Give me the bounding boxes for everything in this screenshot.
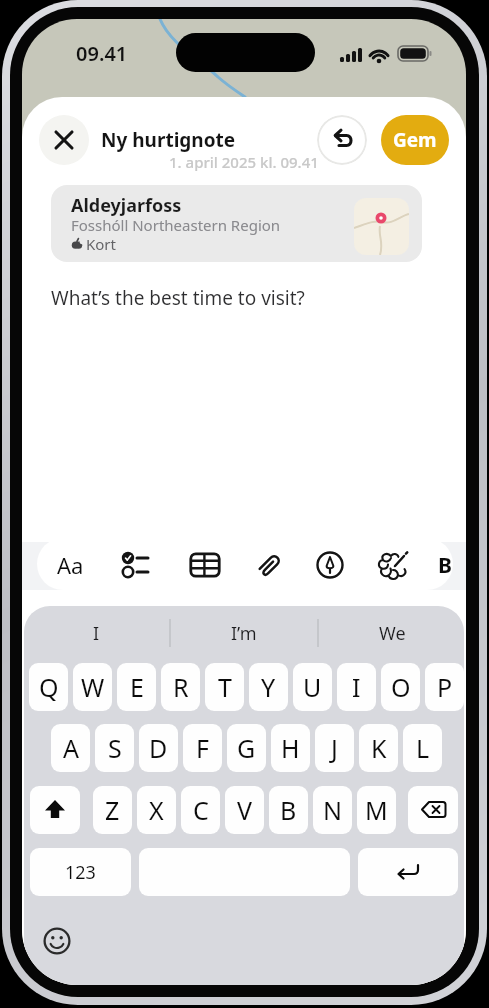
button[interactable]: We <box>320 619 464 647</box>
staticText: A <box>63 731 79 765</box>
button[interactable]: I’m <box>172 619 316 647</box>
button[interactable]: L <box>403 724 442 772</box>
button[interactable] <box>358 848 458 896</box>
button[interactable]: I <box>337 663 376 711</box>
button[interactable]: J <box>315 724 354 772</box>
button[interactable]: H <box>271 724 310 772</box>
button[interactable]: Aa <box>48 549 92 581</box>
staticText: G <box>237 731 256 765</box>
staticText: Y <box>261 670 276 704</box>
staticText: Ny hurtignote <box>101 127 236 153</box>
button[interactable] <box>51 185 422 262</box>
staticText: T <box>218 670 232 704</box>
button[interactable] <box>408 786 458 834</box>
staticText: W <box>81 670 105 704</box>
button[interactable]: A <box>51 724 90 772</box>
button[interactable] <box>252 549 288 581</box>
button[interactable]: T <box>205 663 244 711</box>
staticText: C <box>193 793 209 827</box>
button[interactable] <box>39 115 89 165</box>
staticText: L <box>416 731 430 765</box>
button[interactable] <box>317 115 367 165</box>
button[interactable]: W <box>73 663 112 711</box>
staticText: K <box>371 731 387 765</box>
button[interactable] <box>118 549 154 581</box>
staticText: I’m <box>231 621 257 646</box>
button[interactable]: U <box>293 663 332 711</box>
button[interactable]: O <box>381 663 420 711</box>
button[interactable]: R <box>161 663 200 711</box>
staticText: Aa <box>57 550 84 580</box>
staticText: U <box>303 670 322 704</box>
staticText: Fosshóll Northeastern Region <box>71 215 281 235</box>
button[interactable]: X <box>137 786 176 834</box>
staticText: N <box>323 793 343 827</box>
staticText: F <box>196 731 209 765</box>
button[interactable]: Y <box>249 663 288 711</box>
button[interactable]: F <box>183 724 222 772</box>
staticText: Q <box>39 670 59 704</box>
button[interactable]: I <box>24 619 168 647</box>
button[interactable]: K <box>359 724 398 772</box>
button[interactable]: N <box>313 786 352 834</box>
staticText: J <box>331 731 338 765</box>
staticText: S <box>108 731 122 765</box>
staticText: B <box>280 793 297 827</box>
button[interactable]: E <box>117 663 156 711</box>
button[interactable]: Z <box>93 786 132 834</box>
staticText: O <box>391 670 411 704</box>
button[interactable] <box>139 848 350 896</box>
staticText: H <box>281 731 300 765</box>
staticText: M <box>365 793 388 827</box>
staticText: I <box>352 670 361 704</box>
button[interactable]: B <box>269 786 308 834</box>
staticText: R <box>173 670 189 704</box>
staticText: 123 <box>65 860 96 885</box>
staticText: What’s the best time to visit? <box>51 285 305 311</box>
staticText: D <box>149 731 168 765</box>
button[interactable]: V <box>225 786 264 834</box>
staticText: Z <box>105 793 120 827</box>
button[interactable]: G <box>227 724 266 772</box>
staticText: Kort <box>86 234 116 254</box>
staticText: V <box>237 793 253 827</box>
staticText: We <box>379 621 406 646</box>
staticText: Gem <box>393 127 437 153</box>
button[interactable]: 123 <box>30 848 131 896</box>
staticText: 09.41 <box>76 40 128 67</box>
button[interactable] <box>187 549 223 581</box>
button[interactable]: B <box>430 550 460 580</box>
staticText: 1. april 2025 kl. 09.41 <box>169 152 319 172</box>
button[interactable] <box>312 549 348 581</box>
button[interactable] <box>374 549 412 583</box>
button[interactable]: S <box>95 724 134 772</box>
button[interactable] <box>40 924 74 958</box>
button[interactable] <box>30 786 80 834</box>
staticText: E <box>130 670 144 704</box>
button[interactable]: Q <box>29 663 68 711</box>
staticText: P <box>437 670 453 704</box>
staticText: X <box>149 793 164 827</box>
button[interactable]: Gem <box>381 115 449 165</box>
staticText: B <box>438 551 452 580</box>
staticText: Aldeyjarfoss <box>71 193 182 217</box>
button[interactable]: M <box>357 786 396 834</box>
button[interactable]: P <box>425 663 464 711</box>
button[interactable]: D <box>139 724 178 772</box>
staticText: I <box>93 621 100 646</box>
button[interactable]: C <box>181 786 220 834</box>
